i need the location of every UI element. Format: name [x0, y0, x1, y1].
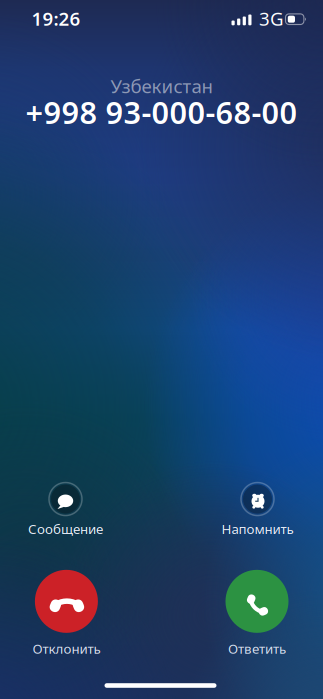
staticText: Узбекистан	[110, 74, 212, 98]
staticText: Напомнить	[221, 520, 293, 538]
staticText: +998 93-000-68-00	[25, 92, 297, 132]
button[interactable]: Сообщение	[28, 482, 103, 538]
staticText: Ответить	[228, 640, 286, 657]
staticText: Отклонить	[32, 640, 100, 657]
staticText: Сообщение	[28, 520, 103, 538]
button[interactable]: Ответить	[225, 570, 288, 657]
button[interactable]: Отклонить	[32, 570, 100, 657]
staticText: 19:26	[31, 6, 80, 31]
staticText: 3G	[259, 6, 284, 31]
button[interactable]: Напомнить	[221, 482, 293, 538]
